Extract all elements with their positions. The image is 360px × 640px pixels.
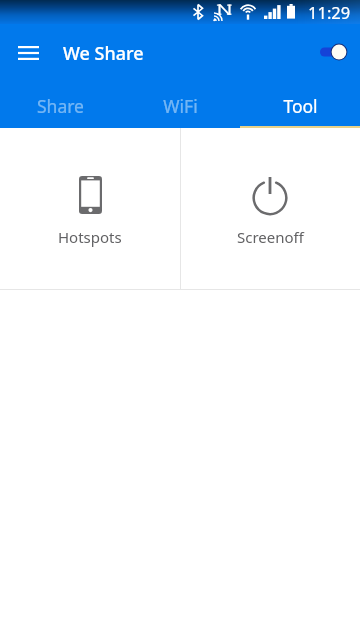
- button[interactable]: Screenoff: [181, 128, 360, 289]
- staticText: Screenoff: [237, 227, 304, 247]
- button[interactable]: Enable sharing: [311, 34, 355, 70]
- button[interactable]: Hotspots: [0, 128, 180, 289]
- staticText: Hotspots: [58, 227, 122, 247]
- button[interactable]: Open navigation menu: [8, 32, 48, 72]
- button[interactable]: WiFi: [120, 80, 240, 128]
- button[interactable]: Share: [0, 80, 120, 128]
- staticText: Share: [37, 94, 84, 118]
- staticText: We Share: [63, 41, 144, 66]
- staticText: Tool: [283, 94, 318, 118]
- staticText: WiFi: [163, 94, 198, 118]
- button[interactable]: Tool: [240, 80, 360, 128]
- staticText: 11:29: [308, 1, 351, 23]
